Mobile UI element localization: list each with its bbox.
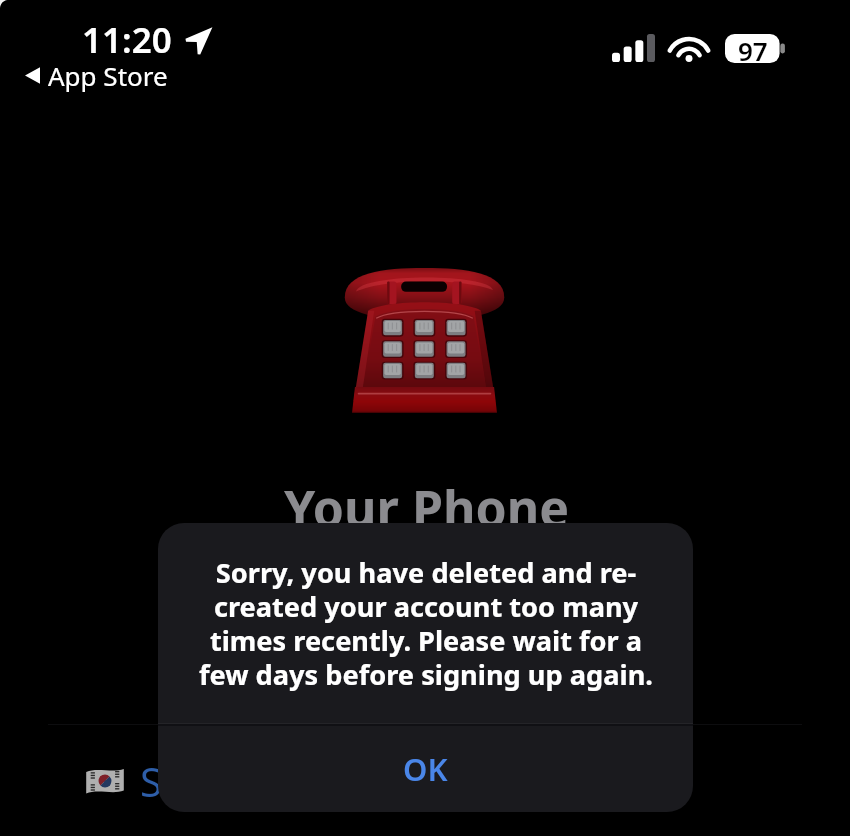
staticText: 97 [738, 33, 768, 62]
other: Battery 97 percent [725, 34, 786, 63]
staticText: OK [403, 748, 448, 790]
other: Cellular signal strength [612, 34, 655, 62]
button[interactable]: OK [158, 726, 693, 812]
button[interactable]: South Korea [0, 725, 850, 836]
other: Location [184, 26, 213, 55]
staticText: Sorry, you have deleted and re- created … [199, 554, 653, 693]
staticText: App Store [48, 58, 168, 93]
staticText: 11:20 [82, 16, 172, 64]
staticText: Your Phone [284, 474, 570, 542]
button[interactable]: App Store [21, 56, 172, 95]
staticText: South Korea [140, 754, 371, 808]
other: Wi-Fi [668, 34, 710, 62]
